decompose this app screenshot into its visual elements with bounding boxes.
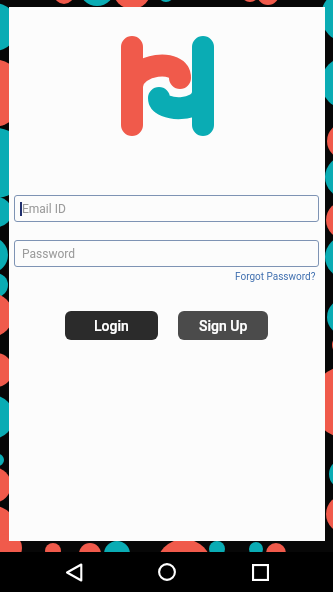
staticText: Forgot Password? — [235, 271, 316, 283]
button[interactable]: Home — [146, 554, 188, 590]
staticText: Email ID — [22, 202, 66, 216]
staticText: Login — [94, 318, 129, 334]
staticText: Password — [22, 247, 76, 261]
button[interactable]: Sign Up — [178, 311, 268, 340]
button[interactable]: Login — [65, 311, 158, 340]
button[interactable]: Forgot Password? — [235, 271, 316, 283]
button[interactable]: Back — [53, 554, 95, 590]
staticText: Sign Up — [199, 318, 248, 334]
button[interactable]: Email ID — [14, 195, 319, 222]
button[interactable]: Password — [14, 240, 319, 267]
button[interactable]: Recent apps — [239, 554, 281, 590]
